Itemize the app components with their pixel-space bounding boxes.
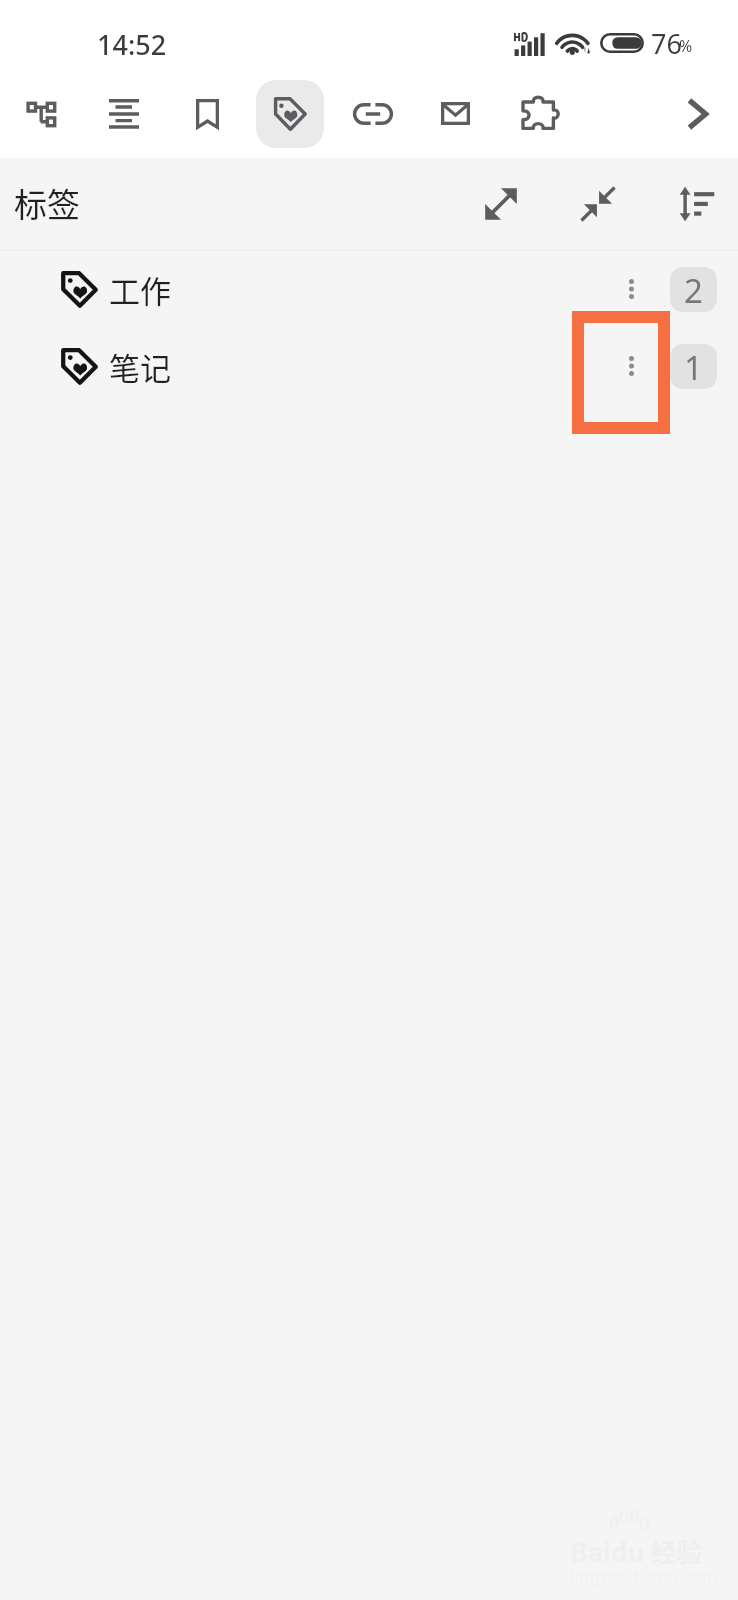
staticText: 14:52 [97,26,167,63]
button[interactable]: Mind map [7,80,75,148]
button[interactable]: More options [607,342,655,390]
button[interactable]: Mail [422,80,490,148]
button[interactable]: More [663,80,731,148]
button[interactable]: Links [339,80,407,148]
button[interactable]: Sort [664,171,730,237]
staticText: 1 [684,345,703,389]
button[interactable]: Collapse all [565,171,631,237]
staticText: 76 [651,25,682,62]
button[interactable]: Tags [256,80,324,148]
button[interactable]: Outline [90,80,158,148]
button[interactable]: 笔记 [0,328,738,405]
button[interactable]: Plugins [505,80,573,148]
button[interactable]: 工作 [0,251,738,328]
button[interactable]: More options [607,265,655,313]
staticText: % [679,35,693,57]
staticText: 2 [684,268,703,312]
button[interactable]: Expand all [468,171,534,237]
staticText: 笔记 [109,344,171,389]
staticText: 工作 [109,267,171,312]
staticText: 标签 [14,179,80,227]
button[interactable]: Bookmarks [173,80,241,148]
